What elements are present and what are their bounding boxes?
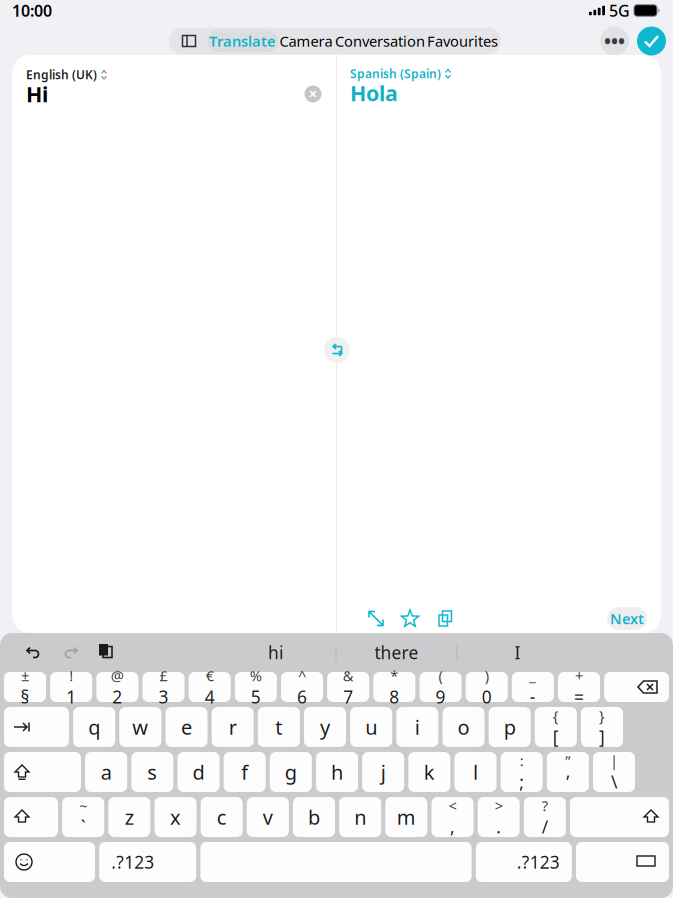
button[interactable]: Camera xyxy=(278,29,334,52)
button[interactable]: v xyxy=(247,797,289,837)
button[interactable]: n xyxy=(339,797,381,837)
staticText: f xyxy=(241,759,248,785)
button[interactable]: Next xyxy=(607,607,647,630)
button[interactable]: ! xyxy=(50,672,92,702)
button[interactable]: Spanish (Spain) xyxy=(350,67,452,80)
staticText: l xyxy=(473,759,478,785)
button[interactable]: % xyxy=(235,672,277,702)
button[interactable]: Tab xyxy=(4,707,69,747)
button[interactable]: Hide keyboard xyxy=(576,842,669,882)
button[interactable]: _ xyxy=(512,672,554,702)
staticText: : xyxy=(520,751,524,770)
staticText: £ xyxy=(159,666,167,685)
button[interactable]: m xyxy=(385,797,427,837)
button[interactable]: j xyxy=(362,752,404,792)
staticText: 5 xyxy=(251,685,261,708)
button[interactable]: a xyxy=(85,752,127,792)
staticText: j xyxy=(381,759,386,785)
button[interactable]: u xyxy=(350,707,392,747)
button[interactable]: .?123 xyxy=(476,842,572,882)
button[interactable]: Conversation xyxy=(334,29,426,52)
staticText: ” xyxy=(565,751,570,770)
button[interactable]: ? xyxy=(524,797,566,837)
button[interactable]: I xyxy=(457,638,577,666)
button[interactable]: Paste xyxy=(88,635,124,669)
button[interactable]: Shift xyxy=(4,797,58,837)
button[interactable]: { xyxy=(535,707,577,747)
button[interactable]: o xyxy=(442,707,484,747)
button[interactable]: : xyxy=(501,752,543,792)
button[interactable]: Copy xyxy=(428,607,462,630)
button[interactable]: q xyxy=(73,707,115,747)
button[interactable]: f xyxy=(224,752,266,792)
staticText: , xyxy=(450,815,455,838)
button[interactable]: x xyxy=(154,797,196,837)
button[interactable]: ~ xyxy=(62,797,104,837)
button[interactable]: there xyxy=(336,638,456,666)
staticText: § xyxy=(20,685,29,708)
button[interactable]: i xyxy=(396,707,438,747)
button[interactable]: Clear xyxy=(304,85,322,103)
button[interactable]: g xyxy=(270,752,312,792)
button[interactable]: Expand xyxy=(359,607,393,630)
button[interactable]: Favourite xyxy=(393,607,427,630)
staticText: { xyxy=(553,706,559,725)
button[interactable]: Shift xyxy=(570,797,669,837)
button[interactable]: e xyxy=(165,707,207,747)
button[interactable]: d xyxy=(177,752,219,792)
button[interactable]: ” xyxy=(547,752,589,792)
button[interactable]: s xyxy=(131,752,173,792)
button[interactable]: @ xyxy=(96,672,138,702)
staticText: 3 xyxy=(158,685,168,708)
button[interactable]: ± xyxy=(4,672,46,702)
button[interactable]: > xyxy=(478,797,520,837)
button[interactable]: t xyxy=(258,707,300,747)
button[interactable]: y xyxy=(304,707,346,747)
button[interactable]: ^ xyxy=(281,672,323,702)
button[interactable]: < xyxy=(431,797,473,837)
button[interactable]: & xyxy=(327,672,369,702)
button[interactable]: hi xyxy=(215,638,335,666)
button[interactable]: c xyxy=(201,797,243,837)
button[interactable]: Redo xyxy=(52,635,88,669)
button[interactable]: * xyxy=(373,672,415,702)
button[interactable]: w xyxy=(119,707,161,747)
button[interactable]: h xyxy=(316,752,358,792)
staticText: 4 xyxy=(205,685,215,708)
button[interactable]: | xyxy=(593,752,635,792)
staticText: @ xyxy=(111,666,124,685)
button[interactable]: } xyxy=(581,707,623,747)
button[interactable]: .?123 xyxy=(99,842,196,882)
button[interactable]: l xyxy=(454,752,496,792)
button[interactable]: Caps lock xyxy=(4,752,81,792)
button[interactable]: + xyxy=(558,672,600,702)
button[interactable]: z xyxy=(108,797,150,837)
staticText: [ xyxy=(553,725,559,748)
staticText: ~ xyxy=(79,796,87,815)
button[interactable]: English (UK) xyxy=(26,68,108,81)
button[interactable]: Sidebar xyxy=(171,29,207,52)
staticText: ••• xyxy=(604,29,625,53)
button[interactable]: Emoji xyxy=(4,842,95,882)
button[interactable]: Translate xyxy=(207,29,278,52)
button[interactable]: b xyxy=(293,797,335,837)
button[interactable]: Swap languages xyxy=(324,337,350,363)
button[interactable]: Done xyxy=(637,26,666,55)
staticText: < xyxy=(448,796,456,815)
staticText: q xyxy=(88,714,100,740)
button[interactable]: k xyxy=(408,752,450,792)
button[interactable]: Undo xyxy=(16,635,52,669)
button[interactable]: Space xyxy=(200,842,472,882)
button[interactable]: ( xyxy=(419,672,461,702)
button[interactable]: p xyxy=(489,707,531,747)
staticText: ! xyxy=(69,666,73,685)
button[interactable]: € xyxy=(189,672,231,702)
button[interactable]: More xyxy=(600,26,629,55)
button[interactable]: r xyxy=(212,707,254,747)
button[interactable]: ) xyxy=(466,672,508,702)
staticText: _ xyxy=(529,666,536,685)
button[interactable]: £ xyxy=(142,672,184,702)
button[interactable]: Favourites xyxy=(426,29,499,52)
button[interactable]: Delete xyxy=(604,672,669,702)
staticText: \ xyxy=(611,770,617,793)
